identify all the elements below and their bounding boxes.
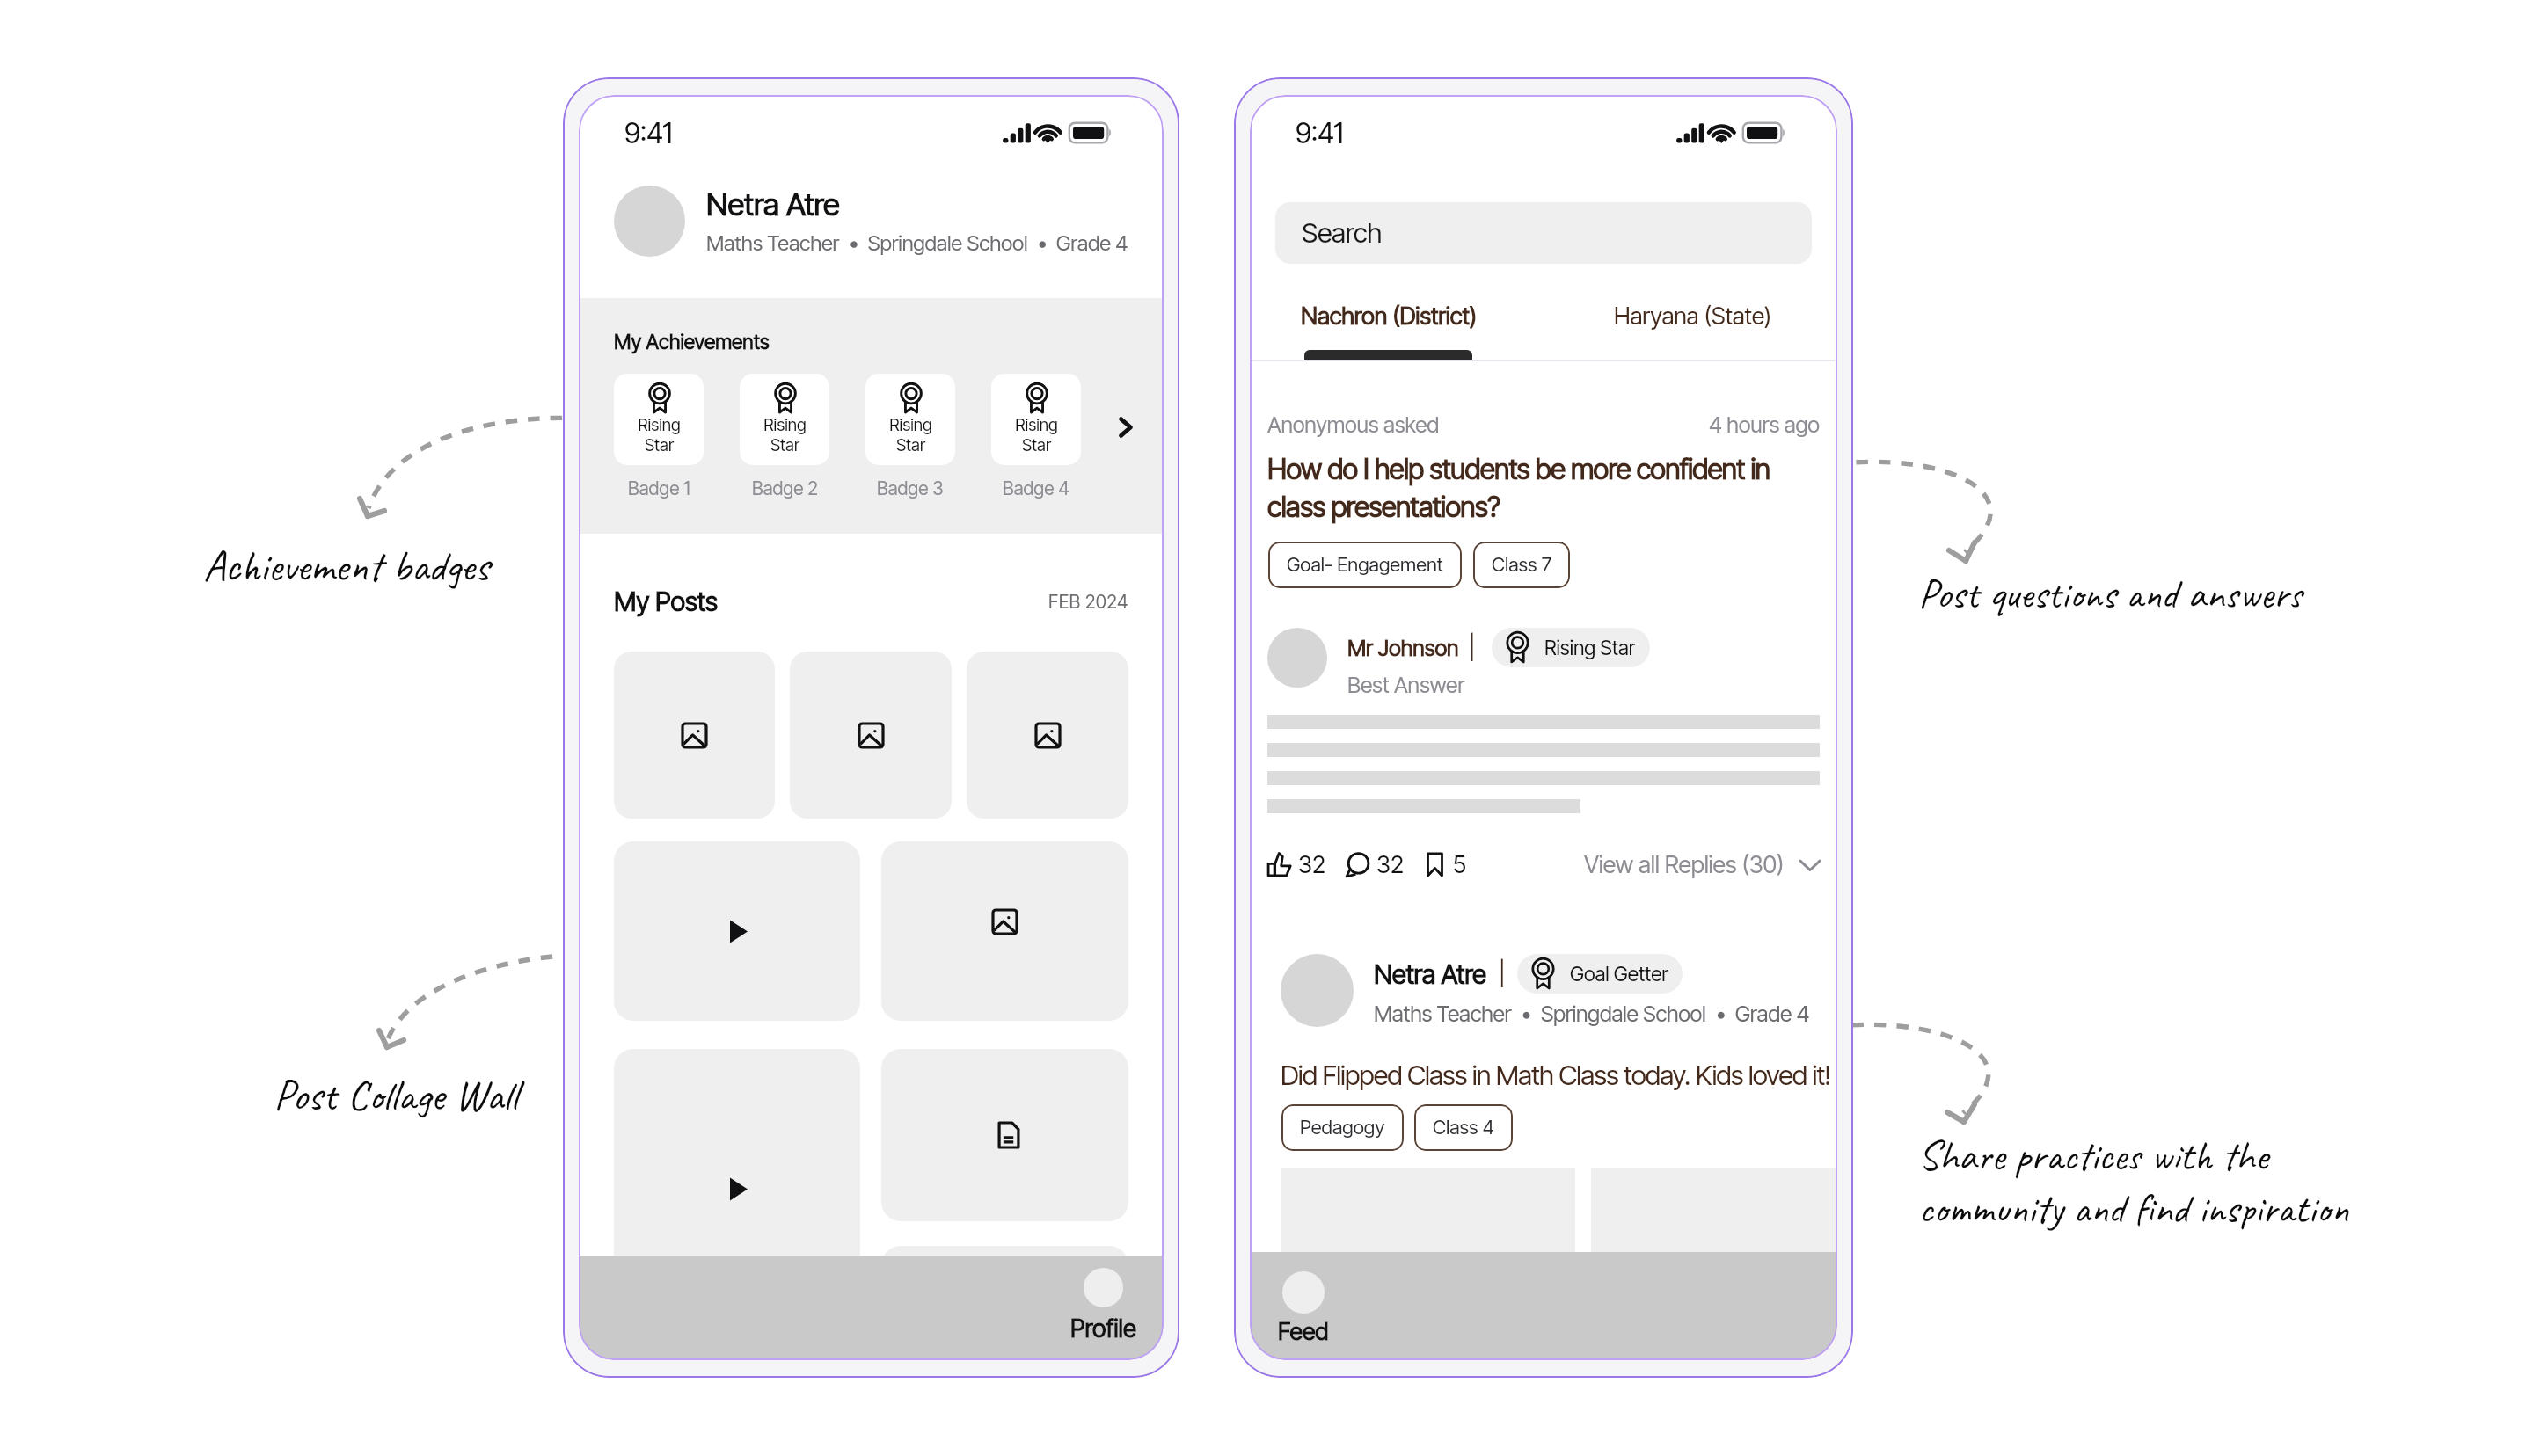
button[interactable]: More badges bbox=[1110, 374, 1142, 465]
staticText: Share practices with the community and f… bbox=[1918, 1130, 2377, 1234]
staticText: | bbox=[1499, 959, 1506, 988]
button[interactable]: Like bbox=[1267, 850, 1326, 879]
staticText: Class 4 bbox=[1433, 1116, 1494, 1139]
staticText: Rising Star bbox=[638, 415, 681, 455]
button[interactable] bbox=[614, 841, 860, 1021]
staticText: View all Replies (30) bbox=[1584, 850, 1785, 879]
staticText: Best Answer bbox=[1347, 672, 1465, 698]
staticText: Haryana (State) bbox=[1614, 302, 1771, 331]
staticText: Maths Teacher • Springdale School • Grad… bbox=[1374, 1001, 1809, 1027]
button[interactable] bbox=[881, 1049, 1128, 1221]
button[interactable]: Pedagogy bbox=[1281, 1104, 1404, 1151]
staticText: Rising Star bbox=[763, 415, 807, 455]
button[interactable]: Feed bbox=[1260, 1252, 1346, 1360]
button[interactable]: Goal- Engagement bbox=[1268, 542, 1462, 588]
button[interactable]: Goal Getter bbox=[1517, 954, 1683, 994]
button[interactable]: Profile bbox=[1056, 1256, 1150, 1360]
button[interactable] bbox=[881, 841, 1128, 1021]
button[interactable]: Class 7 bbox=[1473, 542, 1570, 588]
staticText: 32 bbox=[1376, 850, 1405, 879]
staticText: Goal- Engagement bbox=[1287, 553, 1443, 577]
button[interactable]: Nachron (District) bbox=[1250, 264, 1544, 360]
staticText: My Posts bbox=[614, 586, 718, 617]
staticText: 9:41 bbox=[624, 116, 673, 150]
staticText: 4 hours ago bbox=[1709, 411, 1820, 438]
button[interactable]: Rising Star bbox=[614, 374, 704, 465]
staticText: Badge 2 bbox=[752, 477, 818, 499]
staticText: Pedagogy bbox=[1300, 1116, 1385, 1139]
staticText: Badge 4 bbox=[1003, 477, 1069, 499]
staticText: How do I help students be more confident… bbox=[1267, 452, 1802, 524]
staticText: Goal Getter bbox=[1570, 962, 1668, 986]
button[interactable]: Haryana (State) bbox=[1544, 264, 1837, 360]
button[interactable] bbox=[881, 1246, 1128, 1360]
staticText: Nachron (District) bbox=[1301, 302, 1478, 331]
button[interactable]: Rising Star bbox=[1492, 628, 1650, 667]
staticText: Post Collage Wall bbox=[274, 1068, 518, 1123]
staticText: Rising Star bbox=[1015, 415, 1058, 455]
staticText: Achievement badges bbox=[203, 539, 490, 593]
staticText: Anonymous asked bbox=[1267, 411, 1440, 438]
staticText: 9:41 bbox=[1296, 116, 1344, 150]
staticText: Mr Johnson bbox=[1347, 635, 1459, 661]
staticText: Did Flipped Class in Math Class today. K… bbox=[1281, 1059, 1830, 1092]
button[interactable]: Rising Star bbox=[991, 374, 1081, 465]
staticText: My Achievements bbox=[614, 330, 770, 354]
staticText: Class 7 bbox=[1492, 553, 1551, 577]
staticText: | bbox=[1469, 634, 1476, 661]
staticText: Maths Teacher • Springdale School • Grad… bbox=[706, 230, 1128, 256]
button[interactable] bbox=[614, 652, 775, 819]
staticText: Netra Atre bbox=[1374, 958, 1486, 990]
staticText: Badge 1 bbox=[628, 477, 690, 499]
button[interactable] bbox=[967, 652, 1128, 819]
button[interactable]: Class 4 bbox=[1414, 1104, 1513, 1151]
staticText: FEB 2024 bbox=[1048, 591, 1128, 613]
staticText: 32 bbox=[1298, 850, 1326, 879]
staticText: Netra Atre bbox=[706, 186, 840, 222]
staticText: Profile bbox=[1070, 1314, 1136, 1343]
button[interactable]: Rising Star bbox=[740, 374, 829, 465]
button[interactable]: Comment bbox=[1346, 850, 1405, 879]
staticText: Search bbox=[1302, 216, 1382, 250]
button[interactable] bbox=[790, 652, 952, 819]
button[interactable]: Save bbox=[1424, 850, 1467, 879]
staticText: Feed bbox=[1278, 1317, 1329, 1346]
staticText: Rising Star bbox=[889, 415, 932, 455]
button[interactable]: View all Replies (30) bbox=[1584, 850, 1821, 879]
button[interactable]: Search bbox=[1275, 202, 1812, 264]
staticText: 5 bbox=[1453, 850, 1467, 879]
staticText: Post questions and answers bbox=[1918, 568, 2303, 620]
staticText: Badge 3 bbox=[877, 477, 944, 499]
button[interactable] bbox=[614, 1049, 860, 1329]
staticText: Rising Star bbox=[1544, 636, 1636, 660]
button[interactable]: Rising Star bbox=[865, 374, 955, 465]
